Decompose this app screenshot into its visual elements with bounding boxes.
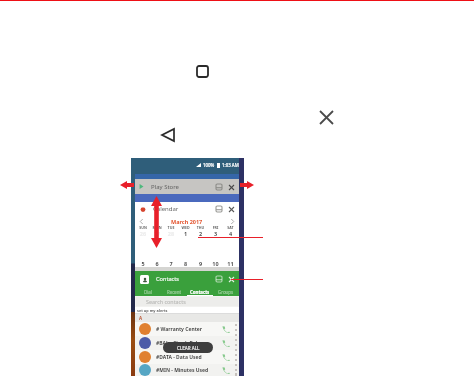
- staticText: #BAL - Check Balance: [156, 340, 210, 347]
- staticText: SUN: [136, 225, 150, 230]
- staticText: TUE: [164, 225, 178, 230]
- staticText: #MIN - Minutes Used: [156, 367, 209, 374]
- button[interactable]: Recent: [161, 287, 187, 296]
- button[interactable]: # Warranty Center: [139, 322, 230, 336]
- staticText: 1:03 AM: [222, 162, 239, 168]
- staticText: 10: [208, 260, 223, 267]
- staticText: Dial: [144, 289, 152, 295]
- staticText: 1: [178, 230, 193, 237]
- staticText: 27: [150, 230, 164, 237]
- button[interactable]: Calendar: [140, 202, 234, 216]
- staticText: 4: [223, 230, 238, 237]
- staticText: # Warranty Center: [156, 326, 203, 333]
- button[interactable]: #MIN - Minutes Used: [139, 364, 230, 376]
- staticText: MON: [150, 225, 164, 230]
- staticText: Groups: [218, 289, 234, 295]
- button[interactable]: #DATA - Data Used: [139, 350, 230, 364]
- staticText: 11: [223, 260, 238, 267]
- staticText: March 2017: [171, 218, 203, 225]
- button[interactable]: Search contacts: [136, 297, 238, 306]
- button[interactable]: Play Store: [135, 179, 239, 194]
- staticText: 8: [178, 260, 193, 267]
- staticText: Search contacts: [146, 298, 186, 305]
- staticText: 100%: [203, 162, 215, 168]
- staticText: 28: [164, 230, 178, 237]
- staticText: SAT: [223, 225, 238, 230]
- staticText: FRI: [208, 225, 223, 230]
- button[interactable]: CLEAR ALL: [163, 342, 213, 353]
- staticText: Contacts: [190, 289, 210, 295]
- staticText: Recent: [167, 289, 182, 295]
- button[interactable]: Overview: [196, 65, 209, 78]
- staticText: set up my alerts: [137, 308, 168, 313]
- button[interactable]: #BAL - Check Balance: [139, 336, 230, 350]
- button[interactable]: Contacts: [187, 287, 213, 296]
- staticText: 7: [164, 260, 178, 267]
- staticText: CLEAR ALL: [177, 345, 200, 351]
- staticText: THU: [193, 225, 208, 230]
- button[interactable]: Close: [320, 111, 333, 124]
- staticText: 3: [208, 230, 223, 237]
- staticText: A: [139, 315, 143, 321]
- staticText: 9: [193, 260, 208, 267]
- staticText: 2: [193, 230, 208, 237]
- staticText: Play Store: [151, 183, 179, 191]
- staticText: 6: [150, 260, 164, 267]
- staticText: 5: [136, 260, 150, 267]
- staticText: #DATA - Data Used: [156, 354, 202, 361]
- staticText: Contacts: [156, 275, 179, 283]
- staticText: Calendar: [153, 205, 179, 213]
- button[interactable]: Contacts: [140, 271, 234, 287]
- button[interactable]: Back: [161, 128, 175, 142]
- button[interactable]: Groups: [213, 287, 239, 296]
- button[interactable]: Dial: [135, 287, 161, 296]
- staticText: 26: [136, 230, 150, 237]
- staticText: WED: [178, 225, 193, 230]
